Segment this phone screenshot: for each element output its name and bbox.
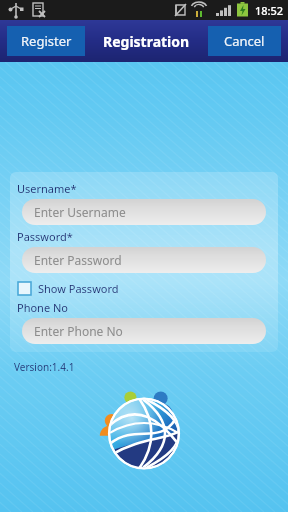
other: App logo [98, 382, 190, 474]
button[interactable]: Show Password [18, 278, 119, 298]
button[interactable]: Enter Phone No [22, 318, 266, 344]
staticText: Registration [103, 32, 190, 51]
staticText: Enter Username [34, 204, 126, 220]
staticText: Cancel [224, 32, 265, 50]
staticText: Enter Password [34, 252, 122, 268]
button[interactable]: Enter Username [22, 199, 266, 225]
staticText: Phone No [17, 300, 68, 315]
staticText: Show Password [38, 281, 119, 296]
button[interactable]: Cancel [208, 26, 281, 56]
button[interactable]: Register [7, 26, 85, 56]
staticText: Register [21, 32, 72, 50]
staticText: Enter Phone No [34, 323, 123, 339]
button[interactable]: Enter Password [22, 247, 266, 273]
staticText: 18:52 [255, 3, 284, 18]
staticText: Password* [17, 229, 73, 244]
staticText: Username* [17, 181, 77, 196]
staticText: Version:1.4.1 [14, 360, 75, 374]
